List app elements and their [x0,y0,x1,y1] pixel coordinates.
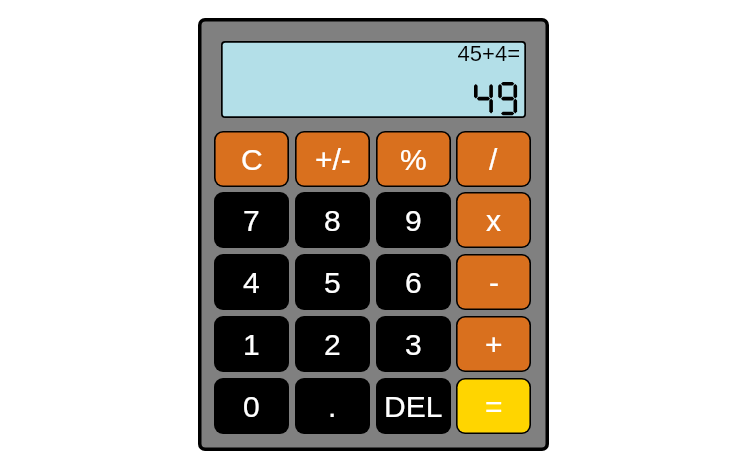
staticText: DEL [384,390,443,424]
button[interactable]: Delete [376,378,451,434]
button[interactable]: 1 [214,316,289,372]
staticText: C [241,143,263,177]
button[interactable]: 4 [214,254,289,310]
staticText: 5 [324,266,341,300]
staticText: x [486,204,501,238]
button[interactable]: 3 [376,316,451,372]
button[interactable]: Multiply [456,192,531,248]
button[interactable]: Divide [456,131,531,187]
staticText: = [485,390,503,424]
staticText: 2 [324,328,341,362]
button[interactable]: 2 [295,316,370,372]
staticText: / [489,143,498,177]
staticText: 0 [243,390,260,424]
staticText: + [485,328,503,362]
button[interactable]: Decimal point [295,378,370,434]
staticText: 1 [243,328,260,362]
button[interactable]: Percent [376,131,451,187]
staticText: 6 [405,266,422,300]
button[interactable]: 0 [214,378,289,434]
button[interactable]: Add [456,316,531,372]
button[interactable]: 8 [295,192,370,248]
staticText: +/- [315,143,351,177]
button[interactable]: Toggle sign [295,131,370,187]
button[interactable]: 5 [295,254,370,310]
staticText: 4 [243,266,260,300]
button[interactable]: Equals [456,378,531,434]
staticText: 3 [405,328,422,362]
staticText: - [489,266,499,300]
staticText: % [400,143,427,177]
staticText: . [328,390,337,424]
staticText: 8 [324,204,341,238]
button[interactable]: 9 [376,192,451,248]
button[interactable]: Clear [214,131,289,187]
button[interactable]: 6 [376,254,451,310]
staticText: 9 [405,204,422,238]
staticText: 45+4= [223,41,520,66]
staticText: 7 [243,204,260,238]
button[interactable]: Subtract [456,254,531,310]
button[interactable]: 7 [214,192,289,248]
